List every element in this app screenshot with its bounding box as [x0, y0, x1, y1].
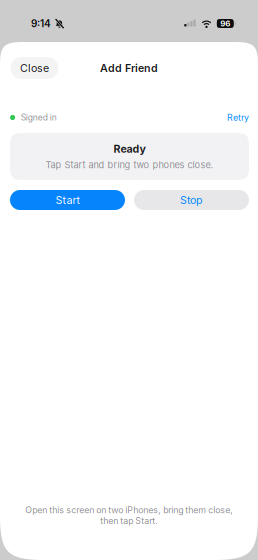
staticText: Add Friend: [100, 61, 158, 74]
button[interactable]: Stop: [134, 190, 249, 210]
button[interactable]: Retry: [221, 112, 249, 123]
button[interactable]: Close: [11, 57, 59, 79]
staticText: Open this screen on two iPhones, bring t…: [25, 505, 233, 526]
staticText: Signed in: [21, 112, 57, 123]
staticText: Tap Start and bring two phones close.: [45, 159, 213, 170]
staticText: Stop: [180, 193, 203, 206]
staticText: 96: [220, 19, 230, 28]
button[interactable]: Start: [10, 190, 125, 210]
staticText: Retry: [227, 112, 249, 123]
staticText: Close: [20, 61, 49, 74]
staticText: Ready: [113, 142, 145, 155]
staticText: 9:14: [31, 17, 51, 30]
staticText: Start: [55, 193, 79, 206]
